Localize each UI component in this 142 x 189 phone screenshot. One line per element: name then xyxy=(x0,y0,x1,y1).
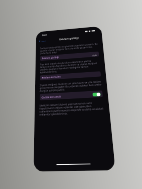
staticText: Tarayıcınızda gizlilik ve güvenlik ayarl… xyxy=(40,42,99,54)
button[interactable]: Back xyxy=(38,39,47,43)
staticText: Açık xyxy=(92,53,97,56)
staticText: Gizlilik korumalı xyxy=(41,94,61,99)
button[interactable]: Reklam konuları xyxy=(40,71,101,81)
staticText: 9:41 xyxy=(42,33,47,36)
button[interactable]: Reklam gizliliği xyxy=(40,51,99,61)
staticText: Reklam gizliliği xyxy=(42,55,59,60)
staticText: Ziyaret ettiğiniz sitelerin sizi tanımas… xyxy=(40,79,102,92)
staticText: Geri xyxy=(41,40,46,42)
button[interactable]: Gizlilik korumalı xyxy=(40,90,103,101)
staticText: Reklam konuları xyxy=(42,75,62,80)
staticText: Size özel olarak oluşturulan reklamların… xyxy=(40,58,100,73)
staticText: Reklam gizliliği xyxy=(59,36,79,41)
staticText: Sitelerin reklam ölçümü yapmasına izin v… xyxy=(39,100,104,116)
